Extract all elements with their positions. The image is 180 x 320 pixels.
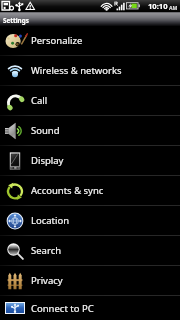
staticText: Personalize — [31, 34, 83, 47]
button[interactable]: Connect to PC — [0, 296, 180, 320]
button[interactable]: Sound — [0, 116, 180, 145]
staticText: Location — [31, 214, 70, 227]
button[interactable]: Privacy — [0, 266, 180, 295]
button[interactable]: Search — [0, 236, 180, 265]
staticText: Search — [31, 244, 62, 257]
staticText: Settings — [3, 16, 29, 25]
staticText: Sound — [31, 124, 60, 137]
staticText: 10:10 — [148, 1, 168, 11]
staticText: Wireless & networks — [31, 64, 122, 77]
button[interactable]: Location — [0, 206, 180, 235]
staticText: AM — [169, 4, 178, 11]
button[interactable]: Call — [0, 86, 180, 115]
staticText: Connect to PC — [31, 302, 94, 315]
staticText: Call — [31, 94, 48, 107]
button[interactable]: Display — [0, 146, 180, 175]
button[interactable]: Wireless & networks — [0, 56, 180, 85]
staticText: Display — [31, 154, 64, 167]
button[interactable]: Personalize — [0, 26, 180, 55]
button[interactable]: Accounts & sync — [0, 176, 180, 205]
staticText: Accounts & sync — [31, 184, 104, 197]
staticText: Privacy — [31, 274, 63, 287]
